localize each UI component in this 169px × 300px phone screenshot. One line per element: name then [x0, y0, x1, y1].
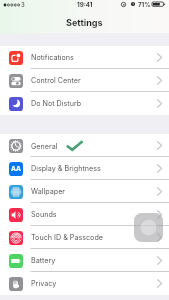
staticText: Touch ID & Passcode [31, 233, 104, 242]
staticText: Battery [31, 256, 56, 265]
button[interactable]: Touch ID & Passcode [0, 226, 169, 249]
button[interactable]: Do Not Disturb [0, 92, 169, 115]
staticText: Display & Brightness [31, 164, 101, 173]
staticText: 19:41 [77, 1, 93, 9]
staticText: General [31, 142, 58, 151]
staticText: 71% [138, 1, 151, 9]
staticText: Wallpaper [31, 187, 66, 196]
button[interactable]: Privacy [0, 272, 169, 295]
staticText: Do Not Disturb [31, 99, 82, 108]
button[interactable]: Notifications [0, 46, 169, 69]
staticText: 3 [21, 1, 25, 8]
button[interactable]: General [0, 134, 169, 157]
staticText: Notifications [31, 53, 74, 62]
button[interactable]: Sounds [0, 203, 169, 226]
staticText: AA [11, 165, 21, 173]
staticText: Settings [66, 17, 103, 28]
staticText: Privacy [31, 279, 57, 288]
button[interactable]: Wallpaper [0, 180, 169, 203]
staticText: Control Center [31, 76, 81, 85]
button[interactable]: AA [0, 157, 169, 180]
button[interactable]: Battery [0, 249, 169, 272]
button[interactable]: Control Center [0, 69, 169, 92]
button[interactable]: AssistiveTouch [134, 213, 163, 242]
staticText: Sounds [31, 210, 57, 219]
